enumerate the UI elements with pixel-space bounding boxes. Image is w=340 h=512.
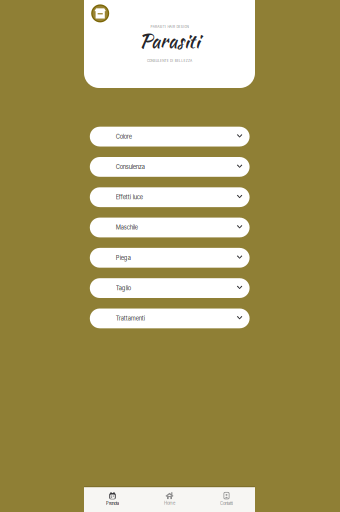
button[interactable]: Trattamenti — [90, 308, 250, 328]
staticText: CONSULENTE DI BELLEZZA — [147, 59, 192, 63]
staticText: Piega — [116, 254, 131, 261]
staticText: Prenota — [106, 501, 119, 506]
button[interactable]: Salon logo — [91, 4, 109, 22]
button[interactable]: Maschile — [90, 218, 250, 237]
staticText: Taglio — [116, 285, 131, 291]
button[interactable]: Taglio — [90, 278, 250, 298]
staticText: Contatti — [220, 501, 233, 506]
staticText: Colore — [116, 133, 132, 140]
button[interactable]: Prenota — [84, 486, 141, 512]
staticText: Consulenza — [116, 163, 145, 170]
staticText: Parasiti — [139, 26, 200, 55]
button[interactable]: Consulenza — [90, 157, 250, 177]
button[interactable]: Colore — [90, 127, 250, 146]
staticText: Trattamenti — [116, 315, 145, 322]
button[interactable]: Effetti luce — [90, 187, 250, 207]
staticText: Maschile — [116, 224, 138, 231]
button[interactable]: Piega — [90, 248, 250, 268]
staticText: PARASITI HAIR DESIGN — [151, 25, 188, 29]
button[interactable]: Contatti — [198, 486, 255, 512]
button[interactable]: Home — [141, 486, 198, 512]
staticText: Home — [164, 501, 175, 506]
staticText: Effetti luce — [116, 194, 143, 201]
